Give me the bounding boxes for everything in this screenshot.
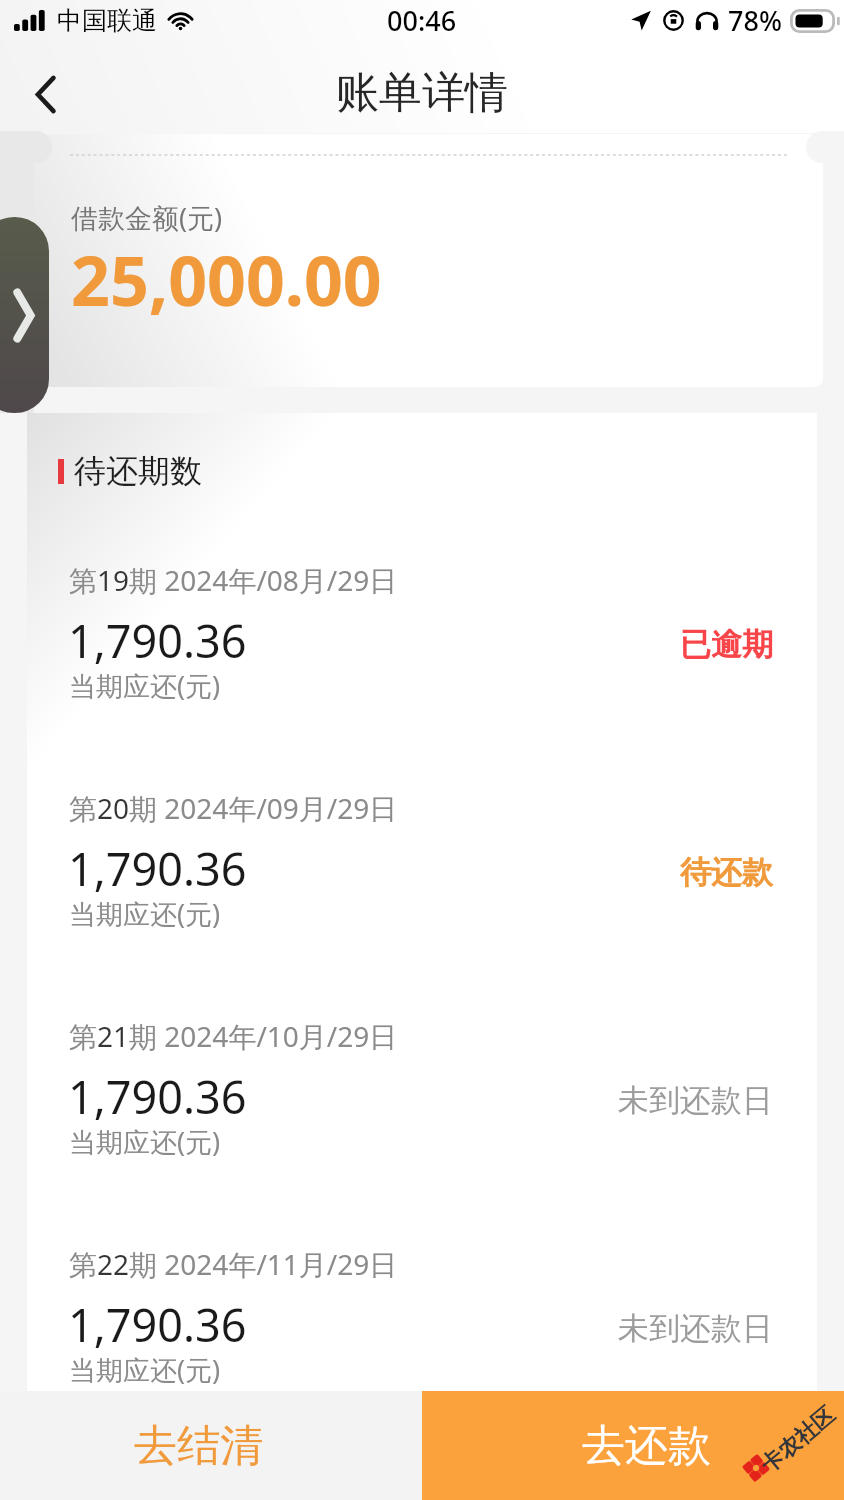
staticText: 待还款 — [680, 853, 773, 892]
button[interactable]: 第21期 2024年/10月/29日 — [27, 1017, 817, 1177]
staticText: 当期应还(元) — [69, 1351, 221, 1388]
button[interactable]: 第20期 2024年/09月/29日 — [27, 789, 817, 949]
button[interactable]: Expand panel — [0, 217, 49, 413]
staticText: 第19期 2024年/08月/29日 — [69, 561, 398, 599]
staticText: 卡农社区 — [755, 1401, 841, 1479]
staticText: 00:46 — [387, 2, 457, 39]
staticText: 25,000.00 — [71, 233, 382, 326]
staticText: 中国联通 — [57, 5, 157, 36]
staticText: 账单详情 — [336, 66, 508, 120]
staticText: 去结清 — [134, 1419, 263, 1473]
staticText: 1,790.36 — [68, 610, 247, 671]
staticText: 去还款 — [582, 1419, 711, 1473]
staticText: 未到还款日 — [618, 1309, 773, 1348]
staticText: 当期应还(元) — [69, 895, 221, 932]
staticText: 当期应还(元) — [69, 667, 221, 704]
staticText: 1,790.36 — [68, 1066, 247, 1127]
button[interactable]: 去还款 — [422, 1391, 844, 1500]
button[interactable]: 第19期 2024年/08月/29日 — [27, 561, 817, 721]
staticText: 已逾期 — [680, 625, 773, 664]
staticText: 第22期 2024年/11月/29日 — [69, 1245, 398, 1283]
staticText: 待还期数 — [74, 451, 202, 491]
staticText: 当期应还(元) — [69, 1123, 221, 1160]
button[interactable]: 去结清 — [0, 1391, 422, 1500]
staticText: 第21期 2024年/10月/29日 — [69, 1017, 398, 1055]
staticText: 未到还款日 — [618, 1081, 773, 1120]
button[interactable]: 第22期 2024年/11月/29日 — [27, 1245, 817, 1405]
staticText: 1,790.36 — [68, 838, 247, 899]
button[interactable]: Back — [17, 66, 73, 122]
staticText: 1,790.36 — [68, 1294, 247, 1355]
staticText: 第20期 2024年/09月/29日 — [69, 789, 398, 827]
staticText: 借款金额(元) — [71, 199, 223, 236]
staticText: 78% — [728, 2, 782, 39]
